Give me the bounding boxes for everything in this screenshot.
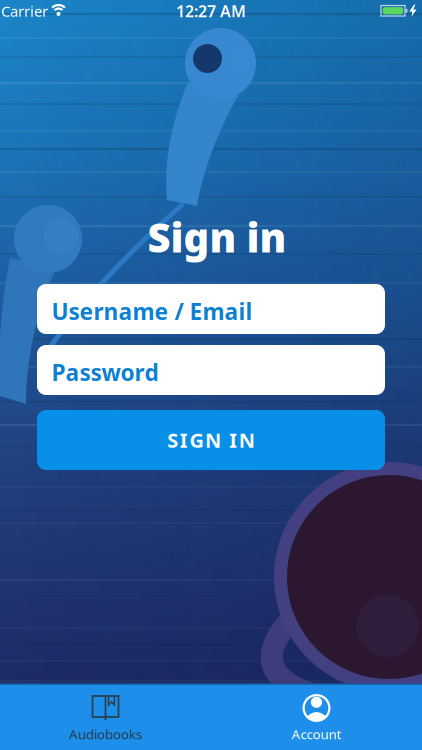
button[interactable]: Username / Email bbox=[37, 284, 385, 334]
button[interactable]: SIGN IN bbox=[37, 410, 385, 470]
staticText: Account bbox=[291, 725, 341, 743]
button[interactable]: Password bbox=[37, 345, 385, 395]
staticText: Sign in bbox=[147, 210, 286, 263]
staticText: Username / Email bbox=[51, 296, 252, 326]
button[interactable]: Audiobooks bbox=[0, 683, 211, 750]
button[interactable]: Account bbox=[211, 683, 422, 750]
staticText: Audiobooks bbox=[69, 725, 142, 743]
staticText: Password bbox=[51, 357, 158, 387]
staticText: SIGN IN bbox=[167, 427, 255, 453]
staticText: 12:27 AM bbox=[176, 0, 246, 22]
staticText: Carrier bbox=[1, 1, 48, 21]
